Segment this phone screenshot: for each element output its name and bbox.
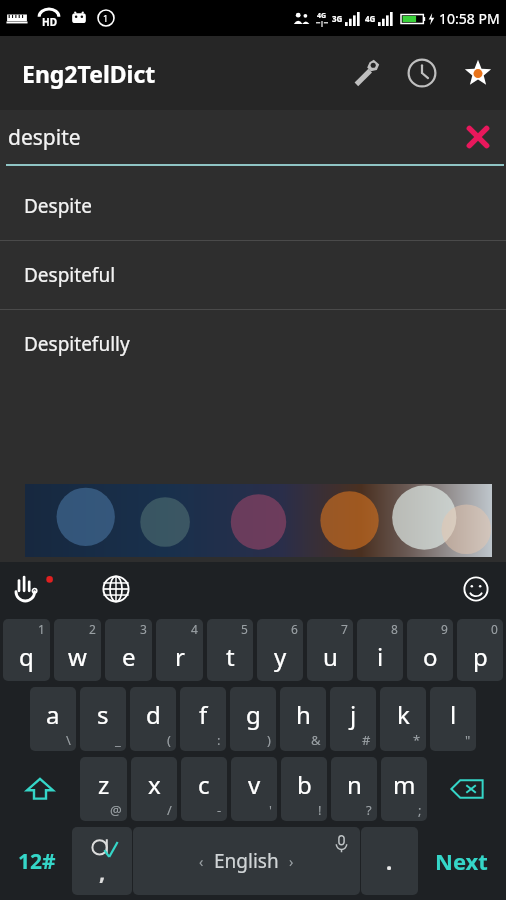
- staticText: ): [267, 731, 271, 749]
- staticText: v: [248, 768, 261, 801]
- staticText: j: [350, 698, 357, 731]
- button[interactable]: History: [394, 45, 450, 101]
- button[interactable]: d: [130, 687, 176, 751]
- staticText: ,: [99, 856, 106, 886]
- staticText: t: [226, 640, 235, 673]
- staticText: &: [311, 731, 321, 749]
- button[interactable]: n: [331, 757, 377, 821]
- staticText: 3G: [332, 13, 343, 24]
- staticText: #: [362, 731, 371, 749]
- button[interactable]: Settings: [338, 45, 394, 101]
- staticText: HD: [42, 15, 57, 29]
- button[interactable]: Next: [418, 824, 505, 898]
- staticText: i: [377, 640, 384, 673]
- staticText: 10:58 PM: [439, 9, 500, 28]
- staticText: 2: [89, 621, 96, 637]
- staticText: d: [146, 698, 161, 731]
- button[interactable]: Keyboard menu: [4, 565, 52, 613]
- button[interactable]: Despiteful: [0, 241, 506, 309]
- staticText: ': [269, 801, 272, 819]
- button[interactable]: .: [361, 827, 418, 895]
- staticText: 4G: [365, 13, 376, 24]
- button[interactable]: 4: [156, 619, 203, 681]
- staticText: 12#: [18, 847, 56, 876]
- button[interactable]: 8: [357, 619, 403, 681]
- staticText: a: [46, 698, 60, 731]
- button[interactable]: a: [30, 687, 76, 751]
- button[interactable]: 12#: [1, 824, 72, 898]
- staticText: y: [274, 640, 287, 673]
- button[interactable]: j: [330, 687, 376, 751]
- staticText: /: [167, 801, 172, 819]
- staticText: 9: [441, 621, 448, 637]
- button[interactable]: Despite: [0, 172, 506, 240]
- staticText: g: [246, 698, 261, 731]
- staticText: .: [386, 846, 393, 876]
- button[interactable]: Favorites: [450, 45, 506, 101]
- staticText: :: [217, 731, 221, 749]
- staticText: Despiteful: [24, 262, 116, 288]
- button[interactable]: Space, English: [133, 827, 360, 895]
- button[interactable]: 6: [257, 619, 303, 681]
- staticText: @: [110, 801, 122, 819]
- staticText: n: [347, 768, 362, 801]
- button[interactable]: s: [80, 687, 126, 751]
- button[interactable]: Shift: [1, 754, 78, 824]
- button[interactable]: m: [381, 757, 427, 821]
- button[interactable]: 5: [207, 619, 253, 681]
- button[interactable]: z: [80, 757, 127, 821]
- staticText: 8: [391, 621, 398, 637]
- staticText: 4G: [317, 11, 327, 21]
- button[interactable]: h: [280, 687, 326, 751]
- staticText: 3: [140, 621, 147, 637]
- button[interactable]: k: [380, 687, 426, 751]
- staticText: b: [297, 768, 312, 801]
- button[interactable]: c: [181, 757, 227, 821]
- button[interactable]: Switch language: [92, 565, 140, 613]
- staticText: s: [97, 698, 109, 731]
- button[interactable]: Advertisement: [25, 484, 492, 557]
- button[interactable]: g: [230, 687, 276, 751]
- button[interactable]: Clear: [450, 109, 506, 165]
- button[interactable]: 1: [3, 619, 50, 681]
- staticText: f: [199, 698, 208, 731]
- button[interactable]: v: [231, 757, 277, 821]
- staticText: m: [393, 768, 416, 801]
- button[interactable]: 3: [105, 619, 152, 681]
- staticText: h: [296, 698, 311, 731]
- staticText: l: [450, 698, 457, 731]
- button[interactable]: Emoji: [452, 565, 500, 613]
- staticText: p: [473, 640, 488, 673]
- staticText: ;: [418, 801, 422, 819]
- button[interactable]: Despitefully: [0, 310, 506, 378]
- staticText: Eng2TelDict: [22, 58, 156, 89]
- button[interactable]: 0: [457, 619, 503, 681]
- staticText: w: [68, 640, 87, 673]
- staticText: Despite: [24, 193, 92, 219]
- button[interactable]: f: [180, 687, 226, 751]
- staticText: r: [175, 640, 185, 673]
- button[interactable]: 9: [407, 619, 453, 681]
- staticText: despite: [8, 123, 81, 152]
- button[interactable]: 7: [307, 619, 353, 681]
- staticText: \: [66, 731, 71, 749]
- staticText: ‹: [199, 852, 204, 871]
- button[interactable]: x: [131, 757, 177, 821]
- button[interactable]: l: [430, 687, 476, 751]
- button[interactable]: Backspace: [429, 754, 505, 824]
- staticText: x: [148, 768, 161, 801]
- staticText: c: [198, 768, 210, 801]
- staticText: *: [413, 731, 421, 749]
- staticText: ?: [366, 801, 372, 819]
- staticText: u: [323, 640, 338, 673]
- button[interactable]: Auto correct comma: [72, 827, 132, 895]
- staticText: Despitefully: [24, 331, 130, 357]
- staticText: o: [423, 640, 438, 673]
- staticText: z: [98, 768, 110, 801]
- staticText: -: [217, 801, 222, 819]
- button[interactable]: b: [281, 757, 327, 821]
- staticText: (: [167, 731, 171, 749]
- staticText: ": [465, 731, 471, 749]
- staticText: 4: [191, 621, 198, 637]
- button[interactable]: 2: [54, 619, 101, 681]
